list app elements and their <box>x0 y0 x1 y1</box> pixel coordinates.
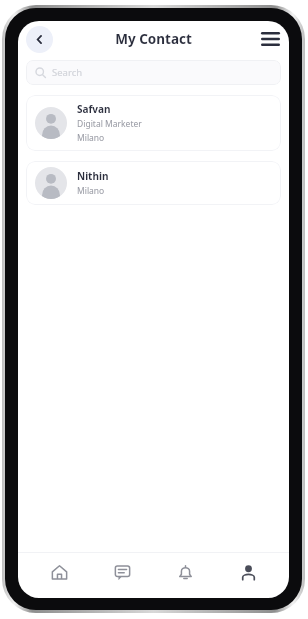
staticText: Milano <box>77 185 105 197</box>
button[interactable]: Back <box>26 26 53 53</box>
button[interactable]: Search <box>26 60 281 85</box>
button[interactable]: Safvan <box>26 95 281 151</box>
staticText: Milano <box>77 132 105 144</box>
button[interactable]: Notifications <box>159 552 211 592</box>
button[interactable]: Nithin <box>26 161 281 205</box>
button[interactable]: Home <box>33 552 85 592</box>
staticText: Safvan <box>77 102 111 116</box>
button[interactable]: Messages <box>96 552 148 592</box>
staticText: Digital Marketer <box>77 118 142 130</box>
button[interactable]: Profile <box>222 552 274 592</box>
staticText: Nithin <box>77 169 109 183</box>
staticText: Search <box>52 66 83 79</box>
button[interactable]: Menu <box>257 26 283 52</box>
staticText: My Contact <box>115 30 192 48</box>
